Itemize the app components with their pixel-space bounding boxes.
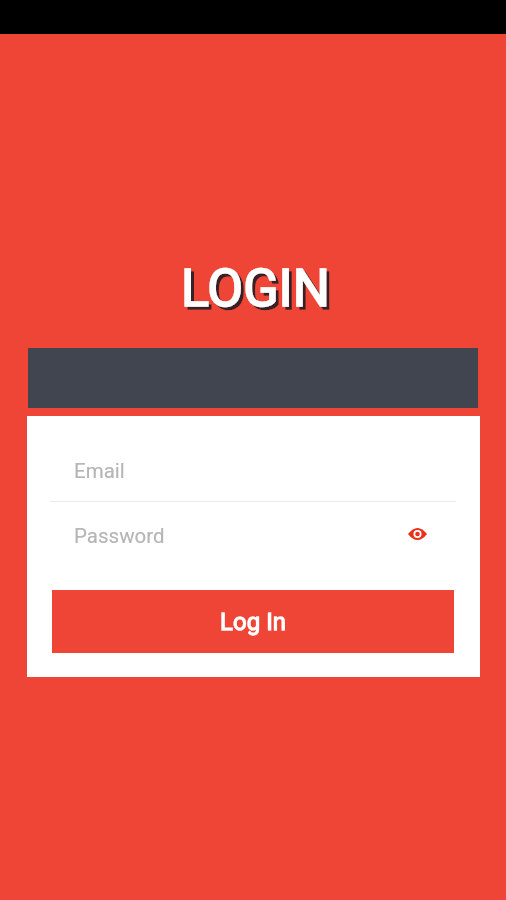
staticText: Password bbox=[74, 524, 165, 548]
staticText: LOGIN bbox=[181, 258, 330, 319]
button[interactable]: Log In bbox=[52, 590, 454, 653]
staticText: Log In bbox=[220, 608, 286, 636]
button[interactable]: Password bbox=[50, 505, 456, 563]
button[interactable]: Email bbox=[50, 440, 456, 502]
staticText: LOGIN bbox=[184, 261, 333, 322]
staticText: Email bbox=[74, 459, 125, 483]
button[interactable]: Show password bbox=[400, 517, 434, 551]
